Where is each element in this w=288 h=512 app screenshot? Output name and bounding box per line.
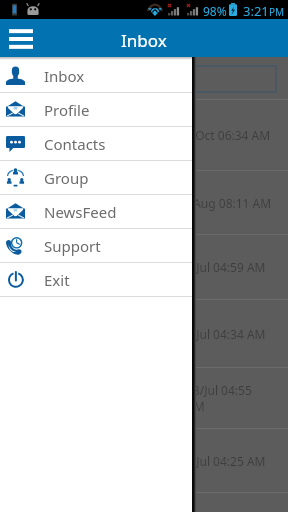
- staticText: Contacts: [44, 134, 106, 154]
- staticText: Profile: [44, 100, 90, 120]
- staticText: 28/Jul 04:34 AM: [178, 326, 266, 342]
- staticText: 28/Jul 04:55 AM: [186, 382, 266, 415]
- staticText: NewsFeed: [44, 202, 117, 222]
- button[interactable]: NewsFeed: [0, 195, 192, 229]
- staticText: 3:21: [243, 2, 269, 20]
- button[interactable]: Profile: [0, 93, 192, 127]
- staticText: Inbox: [44, 66, 85, 86]
- button[interactable]: 28/Jul 04:34 AM: [0, 300, 288, 368]
- button[interactable]: 28/Jul 04:59 AM: [0, 235, 288, 300]
- staticText: 12/Oct 06:34 AM: [177, 127, 271, 143]
- button[interactable]: Exit: [0, 263, 192, 297]
- staticText: Exit: [44, 270, 70, 290]
- staticText: Group: [44, 168, 89, 188]
- button[interactable]: Group: [0, 161, 192, 195]
- button[interactable]: 28/Jul 04:55 AM: [0, 368, 288, 429]
- staticText: Support: [44, 236, 101, 256]
- staticText: 28/Jul 04:25 AM: [178, 453, 266, 469]
- button[interactable]: 12/Oct 06:34 AM: [0, 100, 288, 171]
- button[interactable]: Inbox: [0, 59, 192, 93]
- button[interactable]: Contacts: [0, 127, 192, 161]
- button[interactable]: Support: [0, 229, 192, 263]
- staticText: 98%: [203, 3, 227, 19]
- staticText: Inbox: [121, 29, 167, 52]
- button[interactable]: 28/Jul 04:25 AM: [0, 429, 288, 493]
- staticText: 19/Aug 08:11 AM: [175, 195, 272, 211]
- button[interactable]: 19/Aug 08:11 AM: [0, 171, 288, 235]
- staticText: 28/Jul 04:59 AM: [178, 259, 266, 275]
- button[interactable]: Open navigation drawer: [9, 24, 33, 52]
- staticText: PM: [269, 5, 285, 19]
